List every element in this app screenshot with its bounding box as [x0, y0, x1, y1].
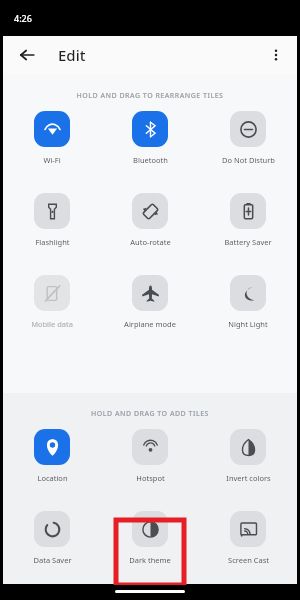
button[interactable]: Back	[13, 41, 41, 69]
button[interactable]: Dark theme	[101, 511, 199, 565]
button[interactable]: Screen Cast	[199, 511, 297, 565]
button[interactable]: Invert colors	[199, 429, 297, 483]
staticText: Hotspot	[136, 473, 165, 483]
staticText: HOLD AND DRAG TO ADD TILES	[3, 409, 297, 419]
button[interactable]: Airplane mode	[101, 275, 199, 329]
staticText: 4:26	[14, 12, 32, 24]
staticText: Battery Saver	[224, 237, 272, 247]
staticText: Bluetooth	[133, 155, 168, 165]
staticText: Wi-Fi	[43, 155, 61, 165]
button[interactable]: Battery Saver	[199, 193, 297, 247]
staticText: Location	[37, 473, 68, 483]
button[interactable]: Flashlight	[3, 193, 101, 247]
button[interactable]: Mobile data	[3, 275, 101, 329]
staticText: Data Saver	[33, 555, 72, 565]
staticText: Mobile data	[31, 319, 73, 329]
button[interactable]: More options	[263, 42, 289, 68]
staticText: Airplane mode	[124, 319, 176, 329]
button[interactable]: Night Light	[199, 275, 297, 329]
button[interactable]: Location	[3, 429, 101, 483]
staticText: Do Not Disturb	[222, 155, 275, 165]
button[interactable]: Do Not Disturb	[199, 111, 297, 165]
staticText: Edit	[58, 45, 86, 65]
button[interactable]: Hotspot	[101, 429, 199, 483]
button[interactable]: Wi-Fi	[3, 111, 101, 165]
staticText: Flashlight	[35, 237, 70, 247]
staticText: Auto-rotate	[130, 237, 171, 247]
staticText: Screen Cast	[228, 555, 269, 565]
staticText: HOLD AND DRAG TO REARRANGE TILES	[3, 91, 297, 101]
staticText: Dark theme	[129, 555, 171, 565]
button[interactable]: Auto-rotate	[101, 193, 199, 247]
button[interactable]: Data Saver	[3, 511, 101, 565]
button[interactable]: Bluetooth	[101, 111, 199, 165]
staticText: Invert colors	[226, 473, 271, 483]
staticText: Night Light	[228, 319, 268, 329]
